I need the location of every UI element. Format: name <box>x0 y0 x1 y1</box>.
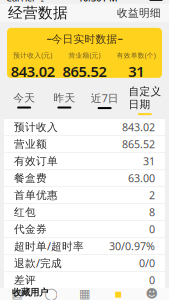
staticText: 30/0.97% <box>109 239 155 253</box>
staticText: 865.52 <box>122 137 155 151</box>
staticText: 有效单数(个) <box>117 51 156 60</box>
button[interactable]: 消息 <box>34 287 68 300</box>
staticText: ☻ <box>146 287 159 300</box>
staticText: 63.00 <box>128 171 155 185</box>
staticText: 865.52 <box>62 62 106 81</box>
staticText: 31 <box>143 154 155 168</box>
staticText: –今日实时数据– <box>46 32 122 46</box>
staticText: 自定义日期 <box>128 85 161 111</box>
staticText: 经营数据 <box>8 4 68 22</box>
staticText: ▤ <box>11 287 22 300</box>
staticText: 昨天 <box>53 91 75 104</box>
staticText: 2 <box>149 188 155 202</box>
staticText: 有效订单 <box>14 155 58 168</box>
button[interactable]: 收益明细 <box>117 6 161 19</box>
button[interactable]: 管理 <box>68 287 101 300</box>
button[interactable]: 我的 <box>135 287 169 300</box>
staticText: 今天 <box>13 91 35 104</box>
staticText: 预计收入(元) <box>13 51 52 60</box>
staticText: 8 <box>149 205 155 219</box>
button[interactable]: 经营 <box>101 287 135 300</box>
staticText: 收藏用户 <box>12 286 48 298</box>
staticText: ▦ <box>79 287 90 300</box>
staticText: 首单优惠 <box>14 189 58 202</box>
button[interactable]: 自定义日期 <box>125 85 165 115</box>
staticText: 近7日 <box>91 91 119 105</box>
staticText: ▪︎ <box>114 287 122 300</box>
staticText: ◯ <box>44 287 57 300</box>
staticText: 营业额(元) <box>68 51 100 60</box>
staticText: 代金券 <box>14 223 47 236</box>
staticText: 超时单/超时率 <box>14 239 84 253</box>
staticText: 收益明细 <box>117 6 161 19</box>
staticText: 红包 <box>14 206 36 219</box>
staticText: 退款/完成 <box>14 256 62 270</box>
staticText: 预计收入 <box>14 121 58 134</box>
staticText: 0 <box>149 222 155 236</box>
button[interactable]: 今天 <box>4 91 44 108</box>
button[interactable]: 昨天 <box>44 91 84 108</box>
staticText: 10:36 PM <box>78 0 118 4</box>
staticText: 0 <box>149 273 155 287</box>
staticText: 843.02 <box>11 62 55 81</box>
staticText: Carrier ᯤ <box>6 0 47 4</box>
staticText: 0/0 <box>139 256 155 270</box>
button[interactable]: 订单 <box>0 287 34 300</box>
staticText: 餐盒费 <box>14 172 47 185</box>
staticText: 31 <box>128 62 144 81</box>
staticText: 843.02 <box>122 120 155 134</box>
staticText: 营业额 <box>14 138 47 151</box>
button[interactable]: 近7日 <box>84 91 125 109</box>
staticText: 差评 <box>14 274 36 287</box>
